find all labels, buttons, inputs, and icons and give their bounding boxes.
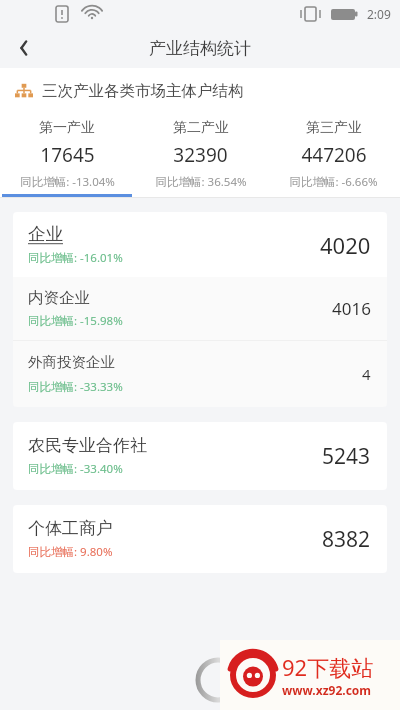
staticText: 92下载站: [282, 652, 374, 682]
staticText: 4020: [320, 230, 371, 260]
staticText: 17645: [40, 142, 95, 168]
staticText: 第二产业: [173, 119, 229, 137]
button[interactable]: 第一产业: [0, 114, 134, 194]
button[interactable]: 内资企业: [13, 277, 387, 340]
staticText: 8382: [322, 525, 371, 554]
staticText: 第一产业: [39, 119, 95, 137]
staticText: 2:09: [367, 6, 391, 22]
staticText: 同比增幅: 9.80%: [28, 544, 113, 560]
staticText: 32390: [173, 142, 228, 168]
staticText: 三次产业各类市场主体户结构: [42, 81, 244, 101]
button[interactable]: 个体工商户: [13, 505, 387, 573]
staticText: www.xz92.com: [282, 682, 372, 698]
staticText: 同比增幅: -15.98%: [28, 313, 123, 329]
button[interactable]: 外商投资企业: [13, 341, 387, 407]
button[interactable]: 第三产业: [267, 114, 400, 194]
staticText: 447206: [301, 142, 367, 168]
staticText: 5243: [322, 442, 371, 471]
staticText: 外商投资企业: [28, 353, 115, 371]
staticText: 同比增幅: -16.01%: [28, 250, 123, 266]
button[interactable]: 第二产业: [134, 114, 267, 194]
staticText: 4: [362, 364, 371, 384]
button[interactable]: Back: [0, 28, 48, 68]
staticText: 同比增幅: -13.04%: [20, 174, 115, 190]
staticText: 同比增幅: -33.33%: [28, 379, 123, 395]
staticText: 个体工商户: [28, 518, 113, 539]
staticText: 产业结构统计: [149, 38, 251, 59]
button[interactable]: 农民专业合作社: [13, 422, 387, 490]
staticText: 同比增幅: -33.40%: [28, 461, 123, 477]
staticText: 农民专业合作社: [28, 435, 147, 456]
staticText: 企业: [28, 223, 63, 245]
staticText: 第三产业: [306, 119, 362, 137]
staticText: 内资企业: [28, 288, 90, 308]
staticText: 4016: [332, 297, 371, 320]
staticText: 同比增幅: -6.66%: [289, 174, 378, 190]
staticText: 同比增幅: 36.54%: [155, 174, 247, 190]
button[interactable]: 企业: [13, 212, 387, 277]
